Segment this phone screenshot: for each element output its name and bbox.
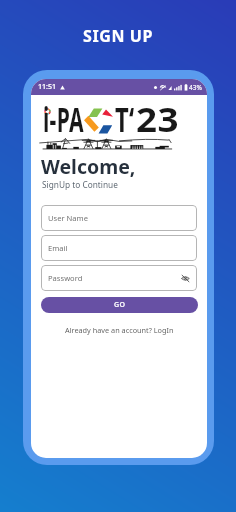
staticText: Password <box>48 273 83 283</box>
other: Show password <box>181 274 190 283</box>
staticText: Email <box>48 243 68 253</box>
staticText: User Name <box>48 213 88 223</box>
button[interactable]: Password <box>41 265 197 291</box>
button[interactable]: User Name <box>41 205 197 231</box>
button[interactable]: GO <box>41 297 198 313</box>
staticText: 23 <box>136 96 179 141</box>
staticText: SignUp to Continue <box>42 179 118 190</box>
staticText: GO <box>114 300 126 310</box>
staticText: 11:51 <box>38 82 56 92</box>
button[interactable]: Already have an account? LogIn <box>41 324 197 336</box>
staticText: Already have an account? LogIn <box>65 325 174 335</box>
staticText: T‘ <box>115 96 135 141</box>
staticText: SIGN UP <box>83 25 154 47</box>
staticText: 43% <box>189 83 202 92</box>
staticText: Welcome, <box>41 153 136 180</box>
staticText: i-PA <box>43 96 84 141</box>
button[interactable]: Email <box>41 235 197 261</box>
